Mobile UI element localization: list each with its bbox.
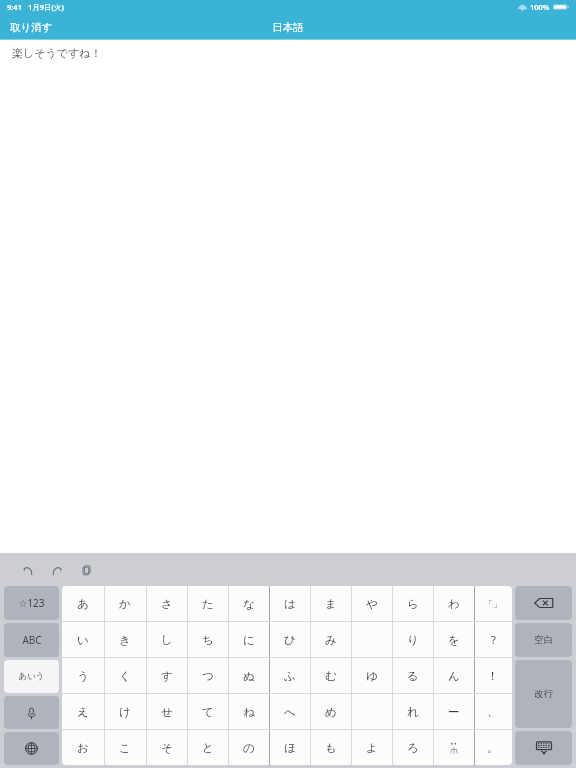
button[interactable]: Hide keyboard — [515, 731, 572, 765]
button[interactable]: き — [104, 622, 146, 657]
button[interactable]: ! — [474, 658, 512, 693]
button[interactable]: み — [310, 622, 351, 657]
button[interactable]: Next keyboard — [4, 732, 59, 765]
staticText: と — [202, 741, 214, 755]
button[interactable]: り — [392, 622, 433, 657]
button[interactable]: Dictation — [4, 696, 59, 729]
button[interactable]: ABC — [4, 623, 59, 657]
button[interactable]: 改行 — [515, 660, 572, 728]
staticText: ふ — [284, 669, 296, 683]
button[interactable]: ね — [228, 694, 269, 729]
button[interactable]: え — [62, 694, 104, 729]
button[interactable]: Redo — [44, 557, 70, 583]
button[interactable]: か — [104, 586, 146, 621]
button[interactable]: を — [433, 622, 474, 657]
staticText: や — [366, 597, 378, 611]
button[interactable]: た — [187, 586, 228, 621]
staticText: け — [119, 705, 131, 719]
button[interactable]: そ — [146, 730, 187, 765]
button[interactable]: け — [104, 694, 146, 729]
button[interactable]: ? — [474, 622, 512, 657]
staticText: 、 — [487, 705, 499, 719]
staticText: ん — [448, 669, 460, 683]
staticText: も — [325, 741, 337, 755]
button[interactable]: う — [62, 658, 104, 693]
staticText: れ — [407, 705, 419, 719]
staticText: ち — [202, 633, 214, 647]
staticText: り — [407, 633, 419, 647]
staticText: 日本語 — [272, 21, 304, 34]
staticText: お — [77, 741, 89, 755]
button[interactable]: と — [187, 730, 228, 765]
button[interactable]: あいう — [4, 660, 59, 693]
button[interactable]: 「」 — [474, 586, 512, 621]
button[interactable]: ら — [392, 586, 433, 621]
staticText: か — [119, 597, 131, 611]
button[interactable]: ん — [433, 658, 474, 693]
staticText: ま — [325, 597, 337, 611]
button[interactable]: く — [104, 658, 146, 693]
staticText: ABC — [22, 633, 42, 647]
button[interactable]: ☆123 — [4, 586, 59, 620]
button[interactable]: ゆ — [351, 658, 392, 693]
button[interactable]: 取り消す — [0, 17, 63, 38]
button[interactable]: す — [146, 658, 187, 693]
staticText: 。 — [487, 741, 499, 755]
button[interactable]: な — [228, 586, 269, 621]
button[interactable]: ー — [433, 694, 474, 729]
button[interactable]: は — [269, 586, 310, 621]
staticText: う — [77, 669, 89, 683]
button[interactable]: ふ — [269, 658, 310, 693]
staticText: 1月9日(火) — [28, 2, 64, 12]
button[interactable]: つ — [187, 658, 228, 693]
button[interactable] — [351, 694, 392, 729]
button[interactable]: む — [310, 658, 351, 693]
button[interactable]: わ — [433, 586, 474, 621]
button[interactable] — [433, 730, 474, 765]
button[interactable]: ま — [310, 586, 351, 621]
staticText: め — [325, 705, 337, 719]
button[interactable]: へ — [269, 694, 310, 729]
button[interactable]: れ — [392, 694, 433, 729]
button[interactable]: ち — [187, 622, 228, 657]
staticText: 9:41 — [7, 2, 22, 12]
button[interactable]: Paste — [74, 557, 100, 583]
button[interactable]: や — [351, 586, 392, 621]
button[interactable]: て — [187, 694, 228, 729]
button[interactable]: し — [146, 622, 187, 657]
button[interactable]: 。 — [474, 730, 512, 765]
button[interactable]: 、 — [474, 694, 512, 729]
button[interactable]: Undo — [14, 557, 40, 583]
staticText: ? — [491, 632, 496, 648]
staticText: ほ — [284, 741, 296, 755]
staticText: え — [77, 705, 89, 719]
staticText: に — [243, 633, 255, 647]
staticText: 100% — [530, 2, 550, 12]
button[interactable]: せ — [146, 694, 187, 729]
staticText: み — [325, 633, 337, 647]
button[interactable]: こ — [104, 730, 146, 765]
button[interactable]: の — [228, 730, 269, 765]
button[interactable]: あ — [62, 586, 104, 621]
button[interactable]: お — [62, 730, 104, 765]
button[interactable]: に — [228, 622, 269, 657]
button[interactable]: め — [310, 694, 351, 729]
button[interactable]: 空白 — [515, 623, 572, 657]
button[interactable]: ぬ — [228, 658, 269, 693]
button[interactable]: も — [310, 730, 351, 765]
button[interactable]: ろ — [392, 730, 433, 765]
button[interactable]: い — [62, 622, 104, 657]
staticText: ね — [243, 705, 255, 719]
button[interactable]: ひ — [269, 622, 310, 657]
button[interactable] — [351, 622, 392, 657]
button[interactable]: ほ — [269, 730, 310, 765]
staticText: へ — [284, 705, 296, 719]
button[interactable]: る — [392, 658, 433, 693]
staticText: ゆ — [366, 669, 378, 683]
staticText: た — [202, 597, 214, 611]
staticText: ! — [491, 668, 495, 684]
button[interactable]: さ — [146, 586, 187, 621]
button[interactable]: よ — [351, 730, 392, 765]
staticText: よ — [366, 741, 378, 755]
button[interactable]: Delete — [515, 586, 572, 620]
